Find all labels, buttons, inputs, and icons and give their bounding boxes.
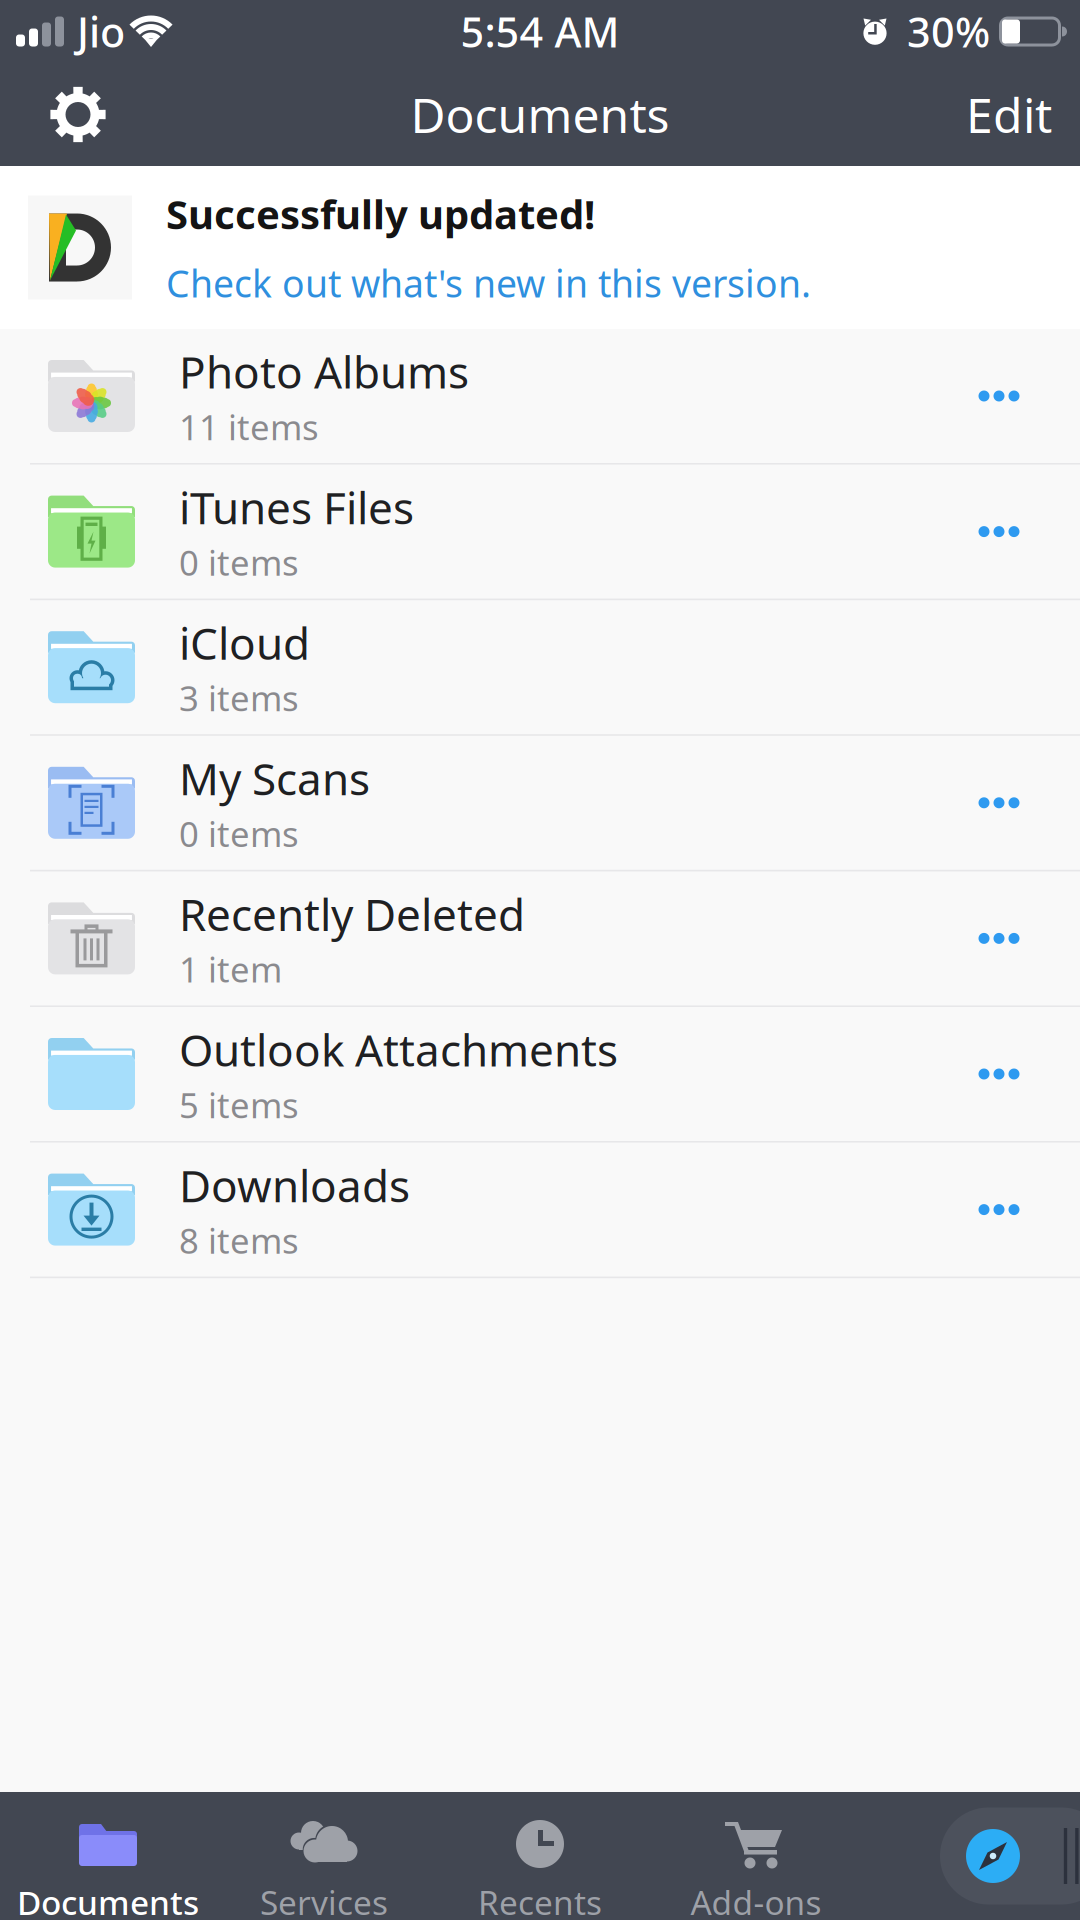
button[interactable]: Browser: [864, 1792, 1080, 1920]
staticText: Documents: [410, 83, 669, 146]
button[interactable]: My Scans: [0, 736, 1080, 871]
button[interactable]: Outlook Attachments: [0, 1007, 1080, 1143]
staticText: 0 items: [179, 810, 299, 856]
staticText: 5 items: [179, 1082, 299, 1128]
staticText: Downloads: [179, 1156, 410, 1214]
staticText: Check out what's new in this version.: [166, 258, 811, 308]
button[interactable]: Recently Deleted: [0, 871, 1080, 1007]
button[interactable]: iCloud: [0, 600, 1080, 736]
button[interactable]: Edit: [922, 64, 1052, 164]
staticText: 8 items: [179, 1217, 299, 1263]
staticText: Jio: [77, 4, 125, 59]
button[interactable]: Add-ons: [648, 1792, 864, 1920]
staticText: iTunes Files: [179, 478, 414, 536]
staticText: Photo Albums: [179, 342, 469, 401]
button[interactable]: Services: [216, 1792, 432, 1920]
staticText: 1 item: [179, 946, 282, 992]
staticText: Outlook Attachments: [179, 1020, 618, 1079]
staticText: 0 items: [179, 539, 299, 585]
button[interactable]: Photo Albums: [0, 329, 1080, 465]
button[interactable]: Downloads: [0, 1143, 1080, 1278]
staticText: 5:54 AM: [460, 4, 619, 59]
button[interactable]: Settings: [28, 64, 128, 164]
button[interactable]: Documents: [0, 1792, 216, 1920]
staticText: Recents: [478, 1880, 602, 1920]
staticText: 3 items: [179, 675, 299, 721]
staticText: Documents: [17, 1880, 199, 1920]
button[interactable]: Successfully updated!: [0, 166, 1080, 329]
staticText: Successfully updated!: [166, 187, 595, 240]
staticText: Recently Deleted: [179, 885, 525, 943]
button[interactable]: Recents: [432, 1792, 648, 1920]
staticText: Services: [260, 1880, 388, 1920]
staticText: 30%: [907, 4, 990, 59]
staticText: Edit: [966, 83, 1052, 146]
staticText: Add-ons: [690, 1880, 821, 1920]
button[interactable]: iTunes Files: [0, 465, 1080, 600]
staticText: iCloud: [179, 613, 310, 672]
staticText: 11 items: [179, 404, 319, 450]
staticText: My Scans: [179, 749, 370, 807]
